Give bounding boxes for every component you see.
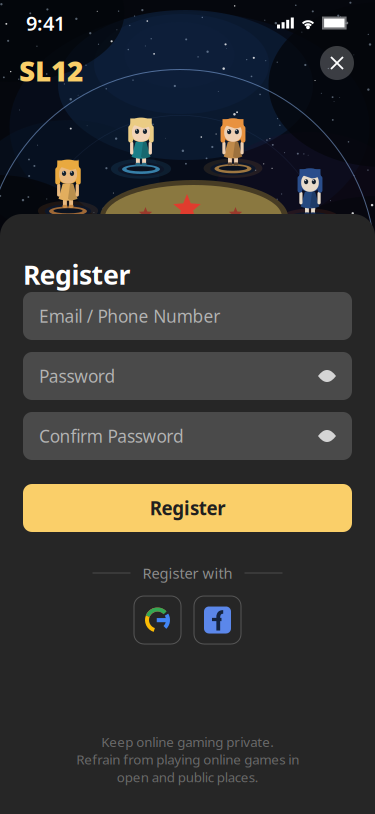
staticText: Register <box>150 496 225 520</box>
button[interactable]: Continue with Facebook <box>194 596 241 644</box>
button[interactable]: Show password <box>310 419 344 453</box>
staticText: Confirm Password <box>39 424 184 447</box>
staticText: SL12 <box>19 52 83 89</box>
staticText: 9:41 <box>26 10 65 36</box>
staticText: Keep online gaming private. Refrain from… <box>76 733 299 786</box>
button[interactable]: Show password <box>310 359 344 393</box>
staticText: Register <box>23 257 130 292</box>
button[interactable]: Continue with Google <box>134 596 181 644</box>
button[interactable]: Register <box>23 484 352 532</box>
button[interactable]: Close <box>320 46 354 80</box>
staticText: Register with <box>142 563 232 583</box>
staticText: Password <box>39 364 116 387</box>
staticText: Email / Phone Number <box>39 304 220 327</box>
